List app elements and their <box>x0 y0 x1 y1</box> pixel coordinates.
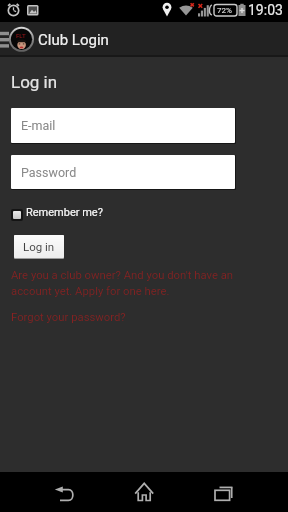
staticText: FLT <box>16 32 26 39</box>
button[interactable]: Are you a club owner? And you don't have… <box>11 269 234 298</box>
button[interactable] <box>0 472 96 512</box>
staticText: 72% <box>217 6 232 15</box>
staticText: Log in <box>11 72 58 92</box>
button[interactable] <box>192 472 288 512</box>
staticText: Log in <box>23 240 55 253</box>
button[interactable]: Remember me? <box>11 206 103 219</box>
staticText: Password <box>21 165 77 180</box>
staticText: 19:03 <box>248 2 283 18</box>
staticText: Remember me? <box>26 206 103 219</box>
button[interactable]: Password <box>11 155 235 189</box>
button[interactable] <box>96 472 192 512</box>
button[interactable]: E-mail <box>11 108 235 143</box>
staticText: E-mail <box>21 118 56 133</box>
button[interactable]: Forgot your password? <box>11 311 126 324</box>
button[interactable]: Log in <box>14 235 64 258</box>
staticText: Club Login <box>38 31 109 49</box>
